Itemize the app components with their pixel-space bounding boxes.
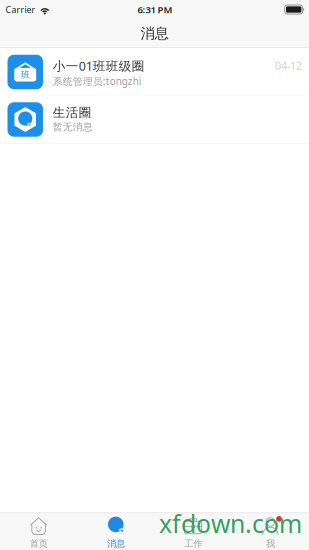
staticText: Carrier [5, 3, 35, 15]
staticText: 工作 [184, 538, 202, 549]
staticText: 班 [21, 69, 30, 80]
staticText: 消息 [107, 538, 125, 549]
staticText: 生活圈 [53, 105, 92, 121]
staticText: 6:31 PM [137, 3, 172, 16]
staticText: 小一01班班级圈 [53, 57, 145, 74]
staticText: 消息 [140, 24, 168, 42]
button[interactable]: 我 [232, 512, 309, 550]
button[interactable]: 工作 [154, 512, 232, 550]
staticText: xfdown.com [159, 506, 302, 540]
staticText: 系统管理员:tongzhi [53, 74, 142, 88]
staticText: 首页 [30, 538, 48, 549]
button[interactable]: 班 [0, 48, 309, 95]
button[interactable]: 生活圈 [0, 95, 309, 143]
staticText: 04-12 [275, 58, 302, 73]
staticText: 我 [266, 538, 275, 549]
button[interactable]: 消息 [77, 512, 154, 550]
staticText: 暂无消息 [53, 121, 93, 133]
button[interactable]: 首页 [0, 512, 77, 550]
